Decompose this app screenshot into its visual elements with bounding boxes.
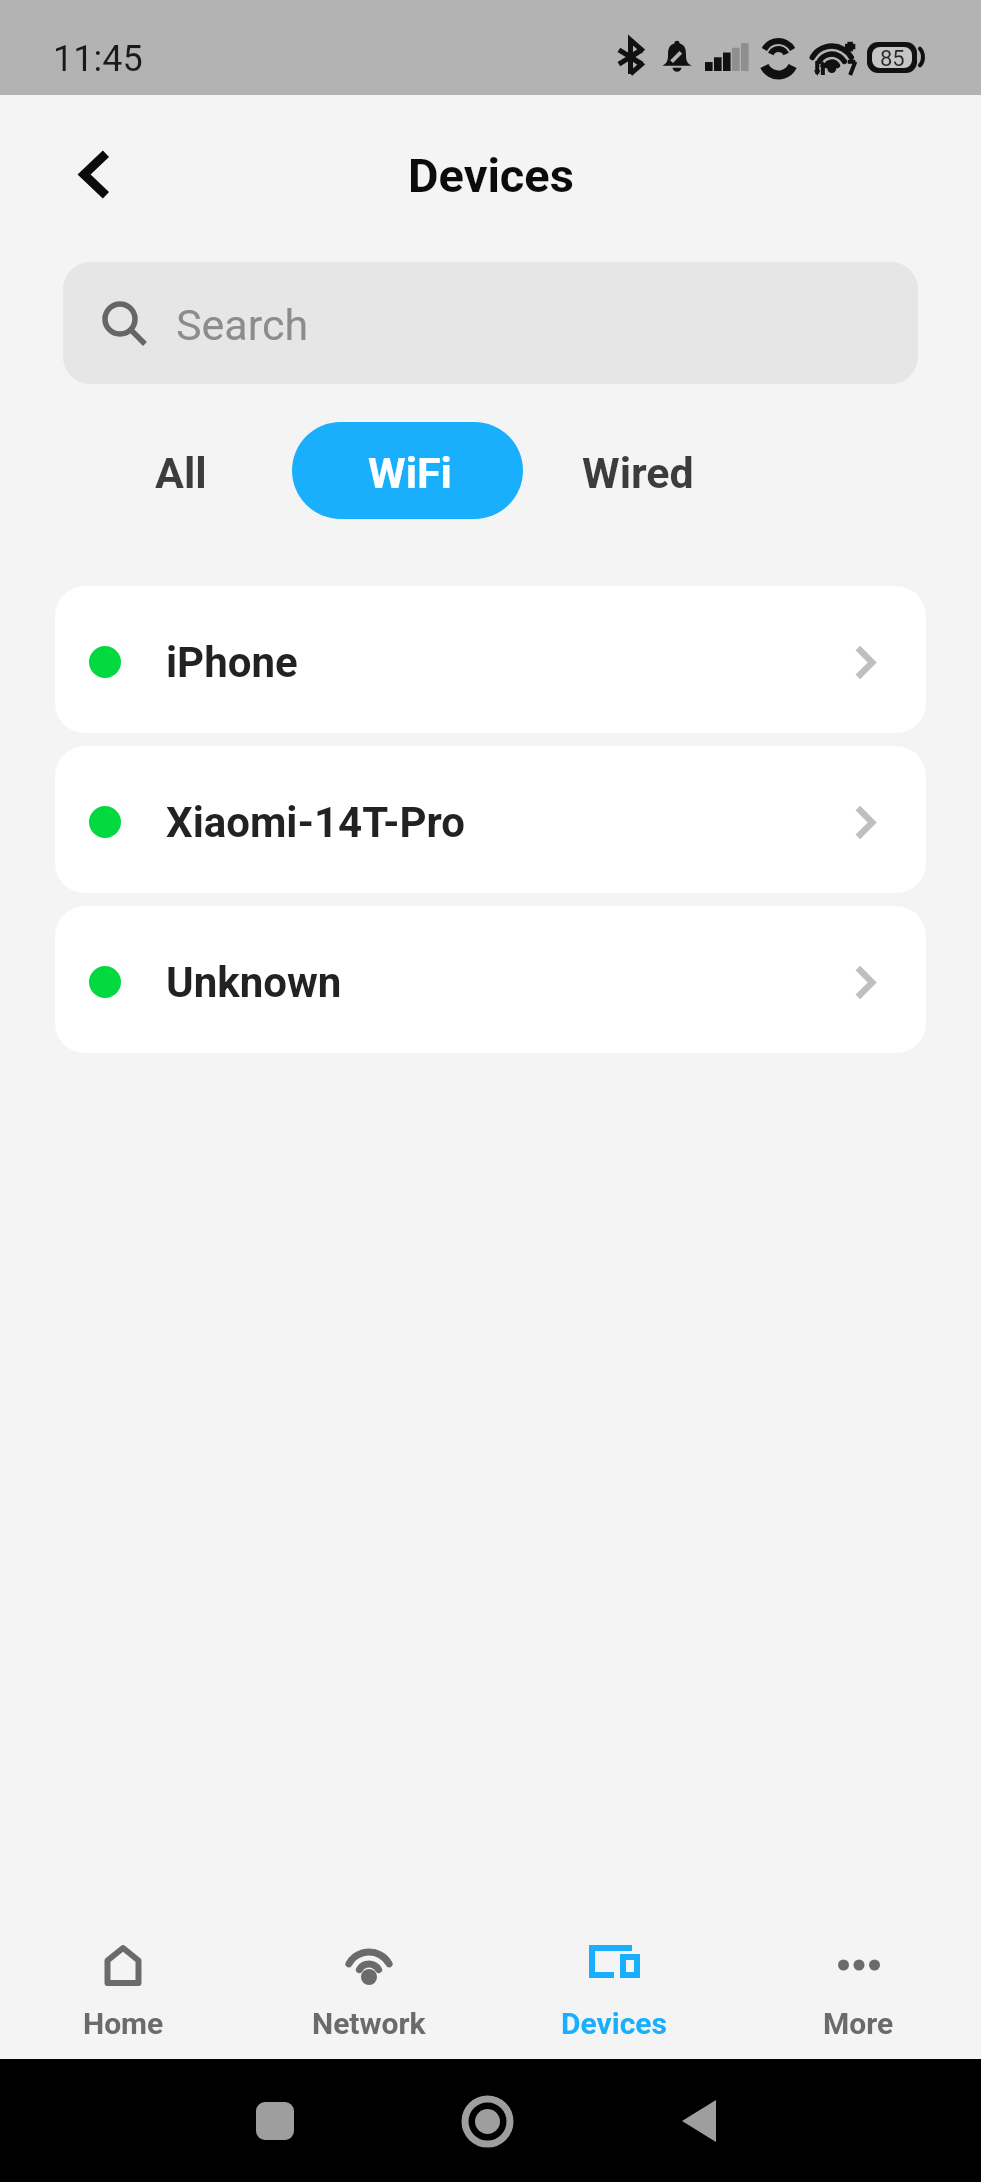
button[interactable]: Devices [491, 1891, 736, 2059]
button[interactable]: Back [51, 130, 139, 218]
button[interactable]: Recents [225, 2071, 325, 2171]
staticText: Network [312, 2006, 426, 2041]
button[interactable]: Wired [564, 422, 712, 519]
button[interactable]: More [736, 1891, 981, 2059]
button[interactable]: WiFi [292, 422, 523, 519]
staticText: 85 [880, 47, 905, 67]
button[interactable]: Xiaomi-14T-Pro [55, 746, 926, 893]
staticText: Xiaomi-14T-Pro [166, 798, 465, 847]
button[interactable]: Back [649, 2071, 749, 2171]
button[interactable]: Network [246, 1891, 491, 2059]
button[interactable]: Search [63, 262, 918, 384]
staticText: iPhone [166, 638, 298, 687]
staticText: 11:45 [53, 38, 143, 80]
button[interactable]: Home [0, 1891, 246, 2059]
button[interactable]: iPhone [55, 586, 926, 733]
staticText: WiFi [368, 448, 452, 498]
staticText: Devices [561, 2006, 667, 2041]
button[interactable]: Home [437, 2071, 537, 2171]
staticText: Unknown [166, 958, 342, 1007]
button[interactable]: Unknown [55, 906, 926, 1053]
staticText: Devices [408, 148, 574, 203]
staticText: More [823, 2006, 894, 2041]
staticText: Home [83, 2006, 164, 2041]
staticText: Search [176, 300, 309, 350]
staticText: Wired [582, 448, 694, 498]
button[interactable]: All [128, 422, 234, 519]
staticText: All [155, 448, 207, 498]
